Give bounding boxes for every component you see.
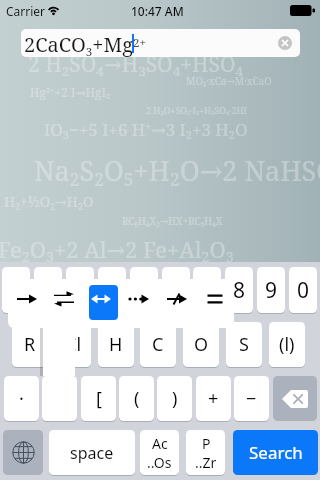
staticText: O [194, 332, 209, 357]
staticText: C [152, 332, 164, 357]
button[interactable]: Backspace [273, 376, 317, 421]
staticText: P [202, 434, 211, 453]
button[interactable]: 8 [225, 267, 253, 313]
button[interactable]: 5 [130, 267, 158, 313]
button[interactable]: Equals [196, 279, 234, 328]
button[interactable]: Reversible [82, 279, 120, 328]
staticText: R [24, 332, 36, 357]
staticText: 7 [201, 276, 214, 305]
staticText: H [109, 332, 123, 357]
staticText: 9 [265, 276, 278, 305]
button[interactable]: Slow reaction [120, 279, 158, 328]
button[interactable]: R [12, 322, 48, 367]
staticText: Na2S2O5+H2O→2 NaHSO [34, 152, 320, 191]
staticText: Ac [152, 434, 168, 453]
staticText: 10:47 AM [131, 3, 184, 19]
staticText: space [70, 442, 114, 464]
staticText: Carrier [6, 3, 46, 19]
staticText: 1 [10, 276, 23, 305]
staticText: Cl [65, 332, 82, 357]
button[interactable]: Ac [140, 430, 179, 475]
button[interactable]: Clear text [278, 36, 292, 50]
staticText: RC6H4X2→HX+RC6H4X [122, 214, 223, 228]
staticText: 2 H2O+SO2·I2+H2SO4·2HI [146, 104, 247, 117]
staticText: 4 [106, 276, 119, 305]
button[interactable]: O [183, 322, 219, 367]
staticText: 2 H2SO4→H3SO4+HSO4 [28, 50, 244, 80]
button[interactable]: ( [119, 376, 154, 421]
staticText: ..Zr [195, 453, 217, 472]
staticText: Hg2++2 I→HgI2 [30, 84, 111, 101]
button[interactable]: Equilibrium [45, 279, 82, 328]
staticText: Search [249, 441, 303, 464]
button[interactable]: Search [233, 430, 318, 475]
button[interactable]: C [140, 322, 176, 367]
staticText: · [19, 386, 24, 411]
button[interactable]: Does not react [158, 279, 196, 328]
button[interactable]: space [49, 430, 135, 475]
staticText: + [208, 386, 219, 411]
staticText: S [239, 332, 249, 357]
button[interactable]: ) [157, 376, 192, 421]
staticText: MO3·xCa→M·xCaO [186, 74, 272, 88]
button[interactable]: 1 [2, 267, 30, 313]
staticText: ..Os [147, 453, 172, 472]
staticText: − [246, 386, 257, 411]
staticText: ) [172, 386, 178, 411]
staticText: 8 [233, 276, 246, 305]
button[interactable]: S [226, 322, 262, 367]
button[interactable]: 9 [257, 267, 285, 313]
staticText: (l) [279, 332, 295, 357]
button[interactable]: 7 [193, 267, 221, 313]
button[interactable]: 2 [34, 267, 62, 313]
button[interactable]: 6 [162, 267, 190, 313]
button[interactable]: 2CaCO3+Mg2+ [21, 29, 300, 57]
button[interactable]: 4 [98, 267, 126, 313]
staticText: 6 [170, 276, 183, 305]
staticText: 0 [297, 276, 310, 305]
button[interactable]: Switch keyboard [3, 430, 43, 475]
staticText: [ [96, 386, 102, 411]
button[interactable]: Cl [55, 322, 91, 367]
staticText: H2+½O2→H2O [4, 192, 94, 212]
button[interactable]: − [234, 376, 269, 421]
staticText: IO3−+5 I+6 H+→3 I2+3 H2O [44, 118, 248, 143]
button[interactable]: H [98, 322, 134, 367]
staticText: ( [134, 386, 140, 411]
staticText: 2CaCO3+Mg2+ [24, 31, 146, 57]
button[interactable]: P [186, 430, 225, 475]
button[interactable] [42, 376, 77, 421]
staticText: 5 [138, 276, 151, 305]
staticText: Fe2O3+2 Al→2 Fe+Al2O3 [0, 234, 234, 266]
button[interactable]: 3 [66, 267, 94, 313]
button[interactable]: [ [81, 376, 116, 421]
button[interactable]: 0 [289, 267, 317, 313]
staticText: 2 [42, 276, 55, 305]
button[interactable]: Yields arrow [8, 279, 45, 328]
button[interactable]: + [196, 376, 231, 421]
button[interactable]: · [4, 376, 39, 421]
button[interactable]: (l) [269, 322, 305, 367]
